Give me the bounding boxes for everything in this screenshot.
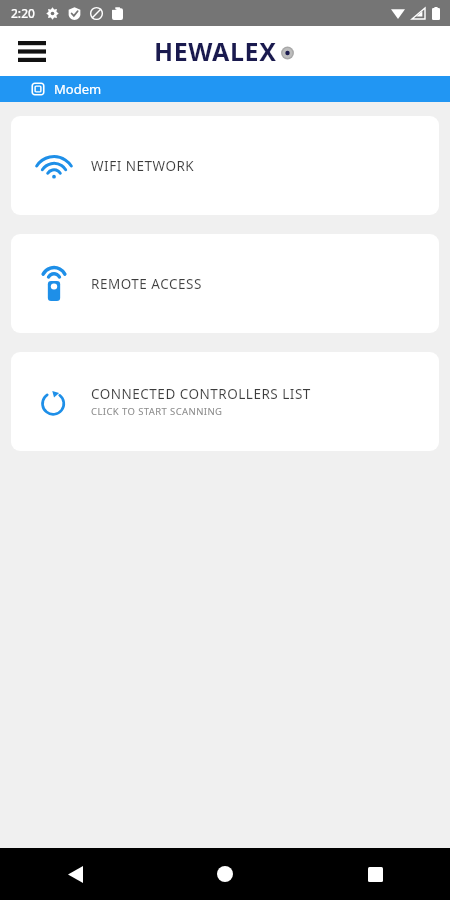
staticText: Modem <box>54 80 102 98</box>
button[interactable]: WIFI NETWORK <box>11 116 439 215</box>
button[interactable]: CONNECTED CONTROLLERS LIST <box>11 352 439 451</box>
button[interactable]: Modem <box>0 76 450 102</box>
button[interactable]: Recent apps <box>300 848 450 900</box>
staticText: HEWALEX <box>154 34 277 68</box>
button[interactable]: Home <box>150 848 300 900</box>
staticText: CLICK TO START SCANNING <box>91 405 223 418</box>
staticText: WIFI NETWORK <box>91 157 195 175</box>
button[interactable]: REMOTE ACCESS <box>11 234 439 333</box>
button[interactable]: Back <box>0 848 150 900</box>
staticText: CONNECTED CONTROLLERS LIST <box>91 385 311 403</box>
staticText: REMOTE ACCESS <box>91 275 202 293</box>
staticText: 2:20 <box>11 5 35 21</box>
button[interactable]: Open navigation menu <box>10 29 54 73</box>
